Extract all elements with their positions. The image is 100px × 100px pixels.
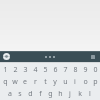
staticText: p [93,77,98,87]
button[interactable]: Keyboard settings [89,53,97,61]
staticText: 0 [93,65,98,75]
button[interactable]: 0 [90,63,100,76]
button[interactable]: s [15,88,25,100]
button[interactable]: 1 [0,63,10,76]
button[interactable]: 6 [50,63,60,76]
staticText: 7 [63,65,68,75]
button[interactable]: h [55,88,65,100]
staticText: d [28,89,33,99]
button[interactable]: d [25,88,35,100]
button[interactable]: l [85,88,95,100]
staticText: 4 [33,65,38,75]
button[interactable]: t [40,76,50,88]
staticText: a [8,89,12,99]
button[interactable]: r [30,76,40,88]
button[interactable]: f [35,88,45,100]
button[interactable]: y [50,76,60,88]
staticText: l [89,89,91,99]
button[interactable]: o [80,76,90,88]
button[interactable]: 7 [60,63,70,76]
staticText: g [48,89,53,99]
staticText: e [23,77,27,87]
staticText: j [69,89,71,99]
button[interactable]: 3 [20,63,30,76]
staticText: f [39,89,42,99]
staticText: w [12,77,18,87]
staticText: 5 [43,65,48,75]
staticText: s [18,89,22,99]
button[interactable]: j [65,88,75,100]
button[interactable]: 9 [80,63,90,76]
staticText: 9 [83,65,88,75]
button[interactable]: 2 [10,63,20,76]
staticText: h [58,89,63,99]
button[interactable] [45,56,55,58]
staticText: 3 [23,65,28,75]
staticText: y [53,77,57,87]
button[interactable]: a [5,88,15,100]
staticText: o [83,77,88,87]
button[interactable]: p [90,76,100,88]
button[interactable]: q [0,76,10,88]
staticText: r [34,77,37,87]
staticText: k [78,89,82,99]
staticText: q [3,77,8,87]
button[interactable]: 5 [40,63,50,76]
button[interactable]: k [75,88,85,100]
staticText: t [44,77,47,87]
staticText: u [63,77,68,87]
button[interactable]: e [20,76,30,88]
staticText: i [74,77,76,87]
staticText: 6 [53,65,58,75]
button[interactable]: 4 [30,63,40,76]
staticText: 2 [13,65,18,75]
button[interactable]: g [45,88,55,100]
staticText: 8 [73,65,78,75]
button[interactable]: Switch keyboard [2,52,11,61]
button[interactable]: 8 [70,63,80,76]
staticText: 1 [3,65,8,75]
button[interactable]: w [10,76,20,88]
button[interactable]: u [60,76,70,88]
button[interactable]: i [70,76,80,88]
